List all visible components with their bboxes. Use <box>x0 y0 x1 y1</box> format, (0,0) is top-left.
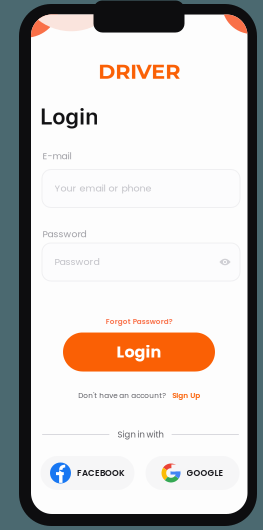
button[interactable]: FACEBOOK <box>40 456 134 490</box>
button[interactable]: GOOGLE <box>145 456 239 490</box>
staticText: Don't have an account? <box>78 390 166 401</box>
staticText: Sign in with <box>117 429 163 440</box>
staticText: DRIVER <box>98 59 180 84</box>
button[interactable]: Forgot Password? <box>31 316 247 326</box>
staticText: FACEBOOK <box>77 467 125 479</box>
staticText: Password <box>54 255 99 268</box>
staticText: Password <box>42 227 86 240</box>
staticText: Sign Up <box>172 390 200 401</box>
button[interactable]: Sign Up <box>172 390 200 401</box>
staticText: Login <box>40 103 98 130</box>
staticText: E-mail <box>42 149 71 162</box>
staticText: GOOGLE <box>186 467 223 479</box>
staticText: Forgot Password? <box>106 316 173 327</box>
button[interactable]: Login <box>63 332 215 371</box>
button[interactable]: Show password <box>212 249 238 275</box>
staticText: Login <box>116 341 161 363</box>
staticText: Your email or phone <box>54 181 151 195</box>
